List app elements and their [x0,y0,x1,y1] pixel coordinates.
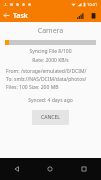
button[interactable]: Home [33,158,67,180]
staticText: To: smb://NAS/DCIM/data/photos/save/Tpmb… [6,76,97,83]
staticText: Files: 100 Size: 200 MB [6,84,97,91]
button[interactable]: Back [0,9,13,22]
button[interactable]: Statistics [74,9,87,22]
staticText: Rate: 2000 KB/s [0,57,101,64]
staticText: 10:31 [87,2,98,7]
staticText: Synced: 4 days ago [0,97,101,104]
staticText: Task [13,11,28,21]
button[interactable]: Recents [67,158,101,180]
staticText: CANCEL [41,114,60,121]
button[interactable]: Back [0,158,33,180]
button[interactable]: CANCEL [32,110,69,125]
button[interactable]: Delete [87,9,100,22]
staticText: Camera [0,26,101,36]
staticText: Syncing File 8/100 [0,48,101,55]
staticText: From: /storage/emulated/0/DCIM/Camera/ [6,68,97,75]
